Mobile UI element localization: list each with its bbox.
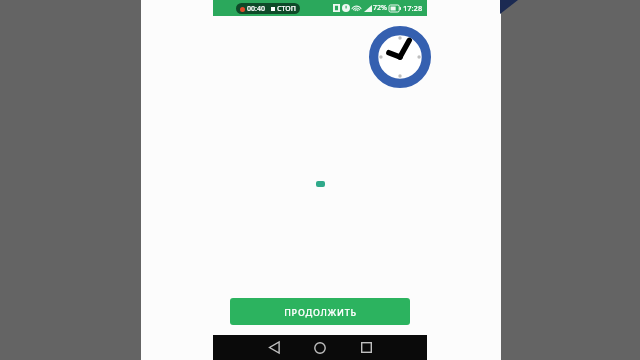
button[interactable]: ПРОДОЛЖИТЬ [230,298,410,325]
staticText: СТОП [277,4,296,14]
staticText: 72% [373,3,387,13]
other: Clock [369,26,431,88]
button[interactable]: Home [307,335,333,360]
staticText: ПРОДОЛЖИТЬ [284,306,357,318]
staticText: 00:40 [247,4,265,14]
button[interactable]: Recents [353,335,379,360]
button[interactable]: 00:40 [236,3,300,14]
staticText: 17:28 [403,3,423,13]
button[interactable]: Back [261,335,287,360]
